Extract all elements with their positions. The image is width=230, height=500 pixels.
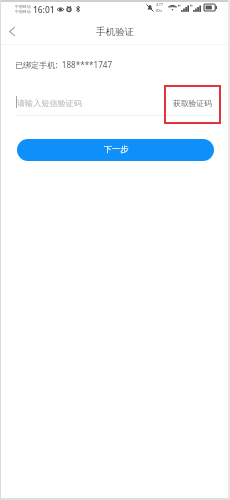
staticText: 下一步 [104, 144, 129, 154]
button[interactable]: Back [0, 15, 23, 45]
staticText: 获取验证码 [173, 99, 212, 109]
staticText: 中国移动 [15, 9, 31, 14]
button[interactable]: 获取验证码 [164, 85, 221, 124]
button[interactable]: 下一步 [17, 139, 214, 161]
staticText: 16:01 [33, 4, 55, 15]
staticText: 中国移动 [15, 4, 31, 9]
staticText: B/s [156, 8, 163, 14]
staticText: 请输入短信验证码 [17, 98, 82, 108]
staticText: 已绑定手机: 188****1747 [15, 59, 113, 70]
staticText: 手机验证 [96, 26, 135, 38]
staticText: 477 [156, 2, 164, 8]
button[interactable]: 请输入短信验证码 [15, 95, 165, 114]
